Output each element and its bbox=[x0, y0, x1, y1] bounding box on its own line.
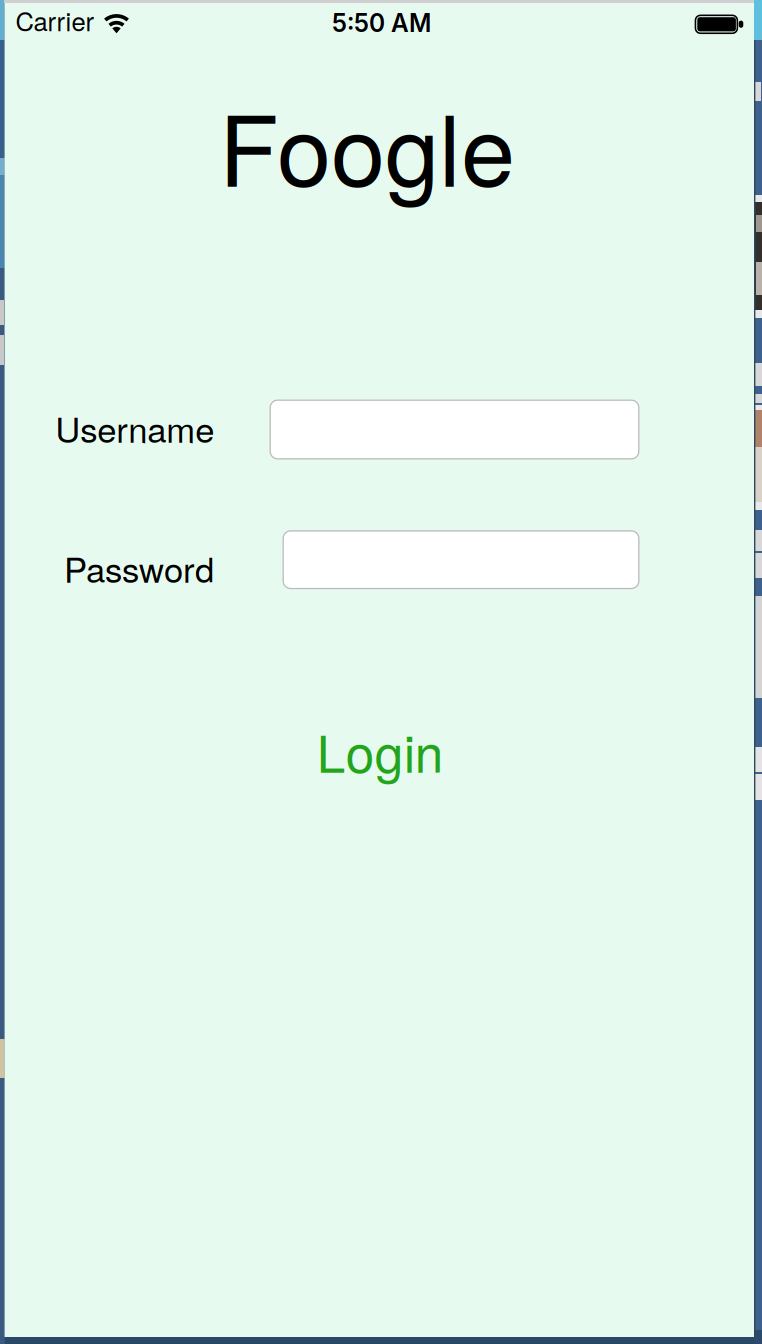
button[interactable]: Username bbox=[269, 399, 639, 459]
staticText: Login bbox=[317, 714, 444, 787]
button[interactable]: Login bbox=[303, 706, 458, 795]
staticText: Carrier bbox=[15, 2, 94, 39]
staticText: Foogle bbox=[219, 75, 515, 214]
staticText: 5:50 AM bbox=[332, 8, 431, 38]
staticText: Username bbox=[55, 403, 214, 453]
button[interactable]: Password bbox=[282, 530, 639, 589]
staticText: Password bbox=[64, 543, 214, 593]
